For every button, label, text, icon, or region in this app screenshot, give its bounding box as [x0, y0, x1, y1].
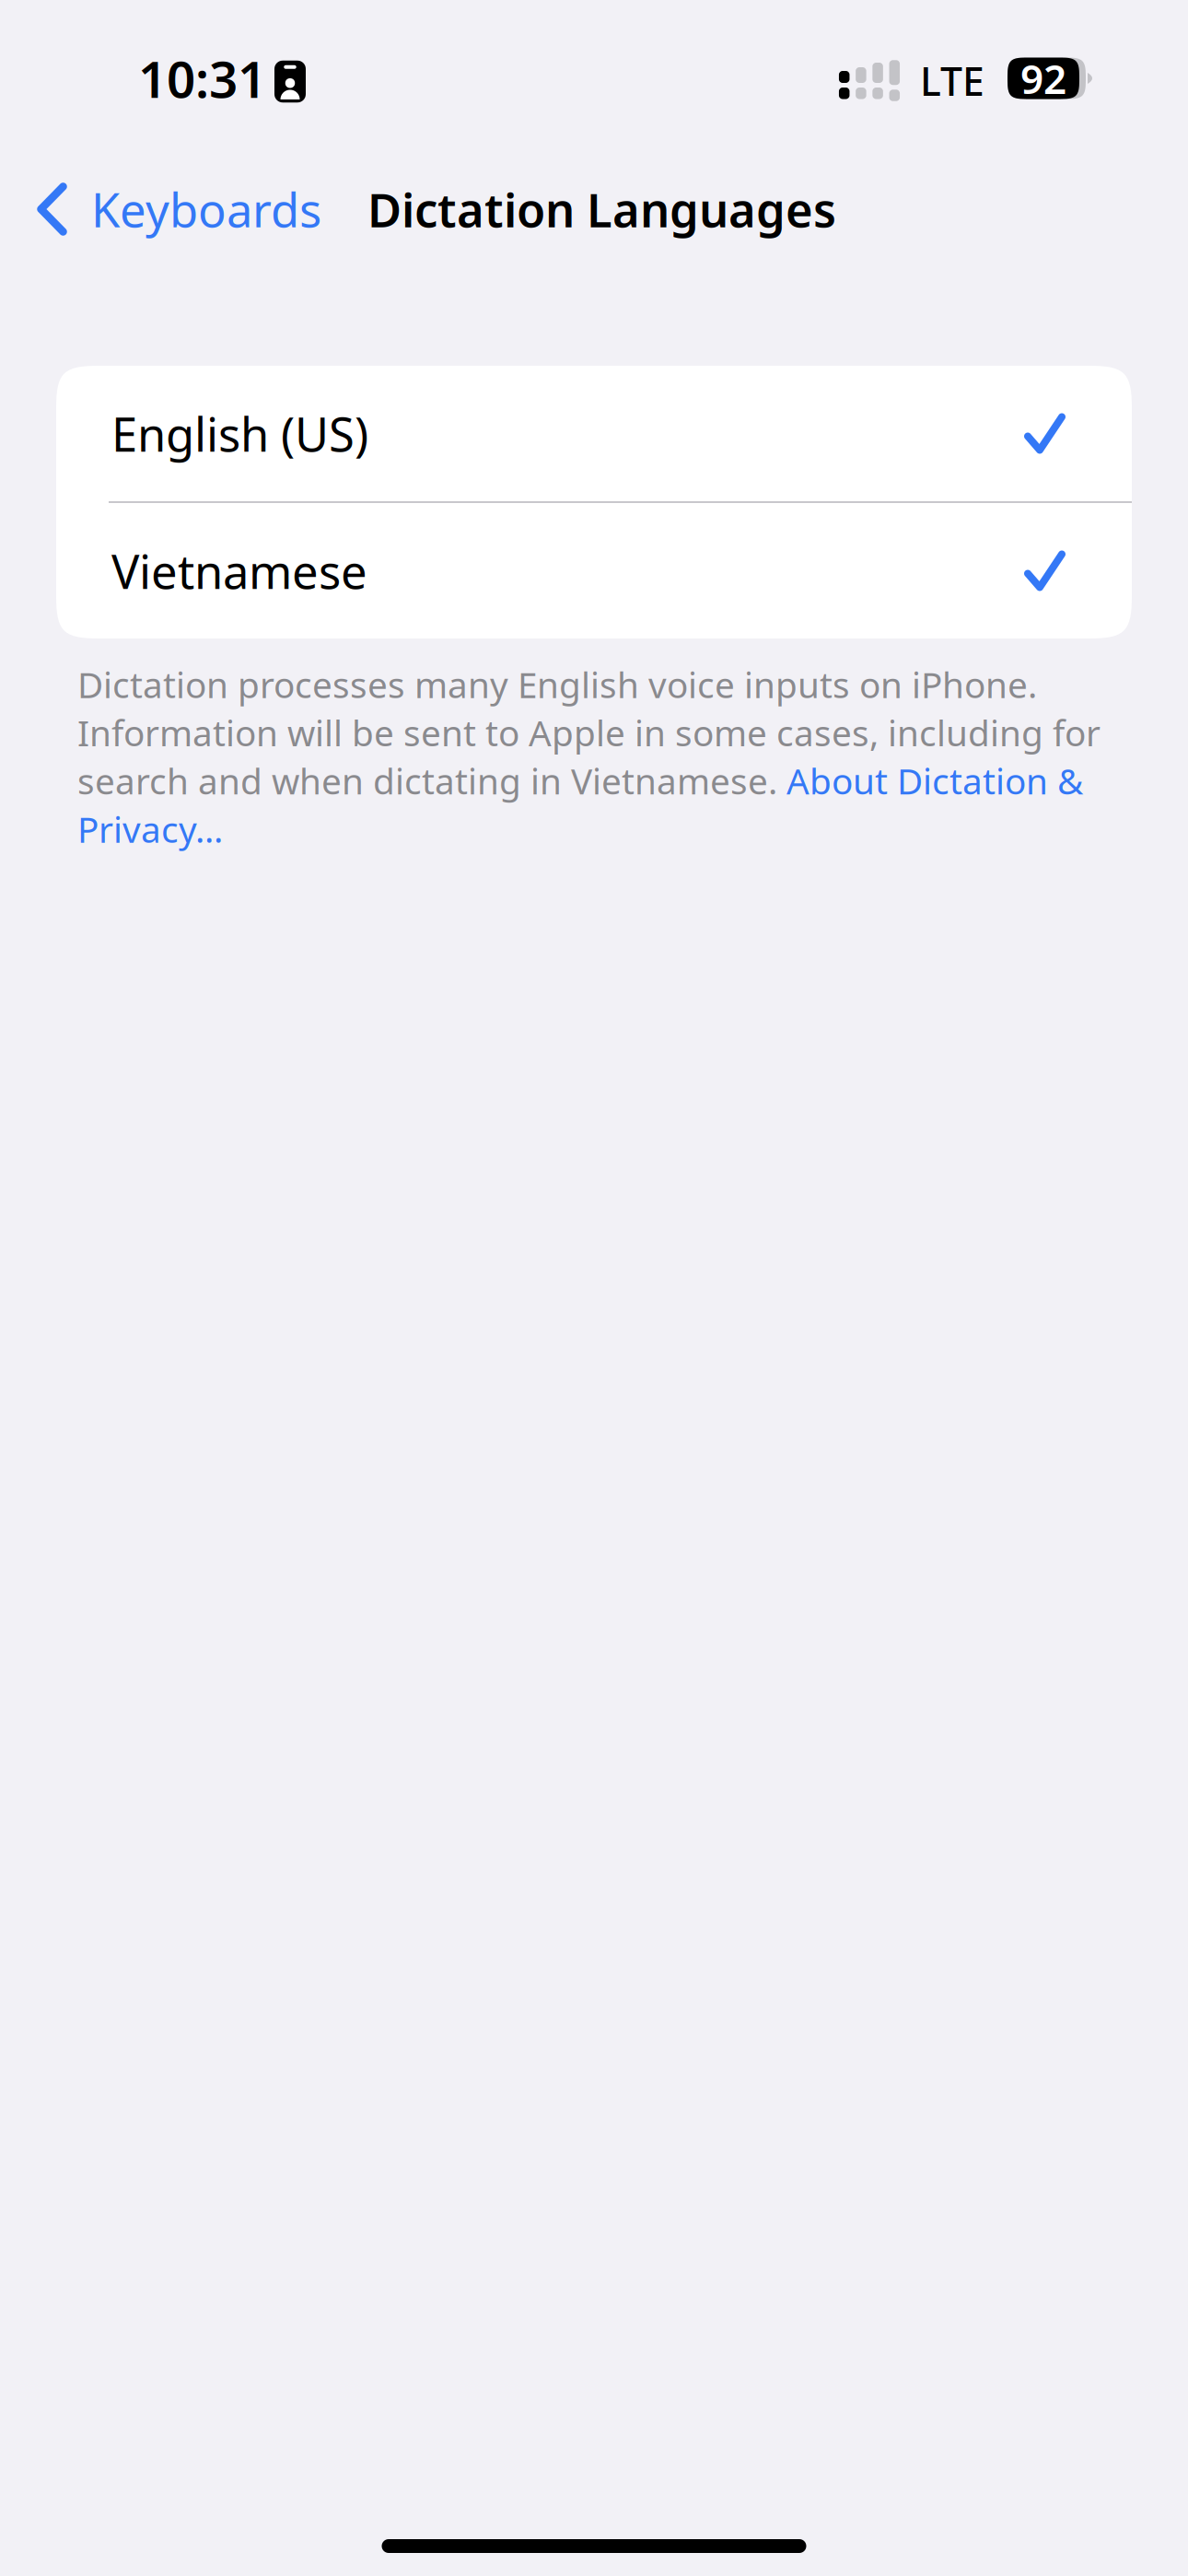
staticText: 92 — [1020, 51, 1066, 105]
staticText: Dictation Languages — [367, 178, 836, 240]
button[interactable]: Dictation processes many English voice i… — [0, 638, 1188, 853]
button[interactable]: Vietnamese — [56, 503, 1132, 638]
button[interactable]: Back to Keyboards — [0, 163, 321, 255]
staticText: Keyboards — [91, 178, 321, 240]
staticText: 10:31 — [138, 45, 266, 112]
staticText: Dictation processes many English voice i… — [77, 661, 1101, 853]
staticText: English (US) — [111, 403, 368, 465]
button[interactable]: English (US) — [56, 366, 1132, 501]
staticText: LTE — [920, 55, 984, 107]
staticText: Vietnamese — [111, 540, 367, 602]
